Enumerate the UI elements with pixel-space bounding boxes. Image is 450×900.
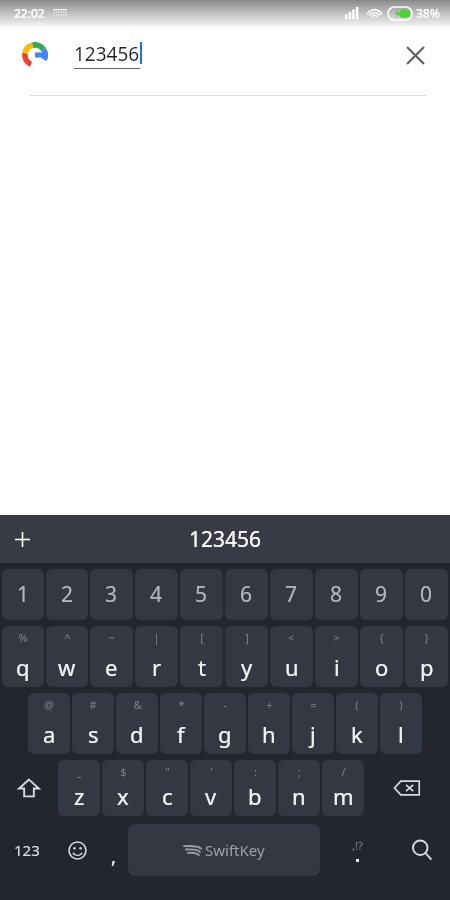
button[interactable]: %	[2, 626, 44, 687]
button[interactable]: )	[380, 693, 422, 754]
staticText: 22:02	[14, 5, 45, 21]
button[interactable]: #	[72, 693, 114, 754]
button[interactable]: 8	[315, 569, 358, 620]
button[interactable]: Backspace	[364, 760, 450, 816]
staticText: n	[292, 781, 306, 811]
button[interactable]: 123	[0, 821, 54, 879]
staticText: ]	[245, 630, 249, 645]
staticText: {	[379, 630, 384, 645]
button[interactable]: ,!?	[320, 821, 394, 879]
staticText: %	[18, 630, 28, 645]
button[interactable]: *	[160, 693, 202, 754]
button[interactable]: Space	[128, 824, 320, 876]
staticText: 123	[14, 840, 40, 860]
staticText: 1	[17, 580, 30, 609]
staticText: t	[198, 652, 206, 682]
staticText: o	[375, 652, 389, 682]
staticText: y	[241, 652, 253, 682]
button[interactable]: &	[116, 693, 158, 754]
staticText: ~	[108, 630, 115, 645]
staticText: =	[310, 697, 317, 712]
staticText: x	[117, 781, 129, 811]
staticText: e	[105, 652, 118, 682]
staticText: b	[248, 781, 262, 811]
button[interactable]: <	[270, 626, 313, 687]
staticText: f	[177, 719, 185, 749]
staticText: @	[44, 697, 54, 712]
staticText: z	[74, 781, 85, 811]
staticText: &	[133, 697, 142, 712]
staticText: 7	[285, 580, 298, 609]
staticText: 6	[240, 580, 253, 609]
button[interactable]: Clear	[398, 38, 432, 72]
button[interactable]: ~	[90, 626, 133, 687]
button[interactable]: /	[322, 760, 364, 816]
button[interactable]: 1	[2, 569, 44, 620]
button[interactable]: Emoji	[54, 821, 100, 879]
button[interactable]: (	[336, 693, 378, 754]
button[interactable]: ;	[278, 760, 320, 816]
staticText: l	[398, 719, 404, 749]
staticText: ;	[298, 764, 301, 779]
button[interactable]: 123456	[0, 515, 450, 563]
staticText: i	[334, 652, 340, 682]
button[interactable]: +	[248, 693, 290, 754]
staticText: (	[355, 697, 359, 712]
staticText: "	[165, 764, 170, 779]
button[interactable]: $	[102, 760, 144, 816]
staticText: ,!?	[352, 838, 363, 853]
staticText: q	[16, 652, 30, 682]
button[interactable]: 5	[180, 569, 223, 620]
button[interactable]: 2	[46, 569, 88, 620]
button[interactable]: @	[28, 693, 70, 754]
staticText: SwiftKey	[205, 840, 265, 860]
staticText: r	[152, 652, 162, 682]
staticText: ,	[111, 843, 117, 869]
button[interactable]: ,	[100, 821, 128, 879]
staticText: a	[43, 719, 56, 749]
button[interactable]: 4	[135, 569, 178, 620]
staticText: 2	[61, 580, 74, 609]
staticText: $	[120, 764, 127, 779]
staticText: )	[399, 697, 403, 712]
staticText: }	[424, 630, 429, 645]
button[interactable]: :	[234, 760, 276, 816]
button[interactable]: 6	[225, 569, 268, 620]
button[interactable]: >	[315, 626, 358, 687]
button[interactable]: _	[58, 760, 100, 816]
button[interactable]: Add	[0, 517, 44, 561]
staticText: u	[285, 652, 299, 682]
staticText: p	[420, 652, 434, 682]
button[interactable]: 3	[90, 569, 133, 620]
staticText: g	[218, 719, 232, 749]
staticText: +	[266, 697, 273, 712]
staticText: m	[333, 781, 354, 811]
button[interactable]: 0	[405, 569, 448, 620]
button[interactable]: 9	[360, 569, 403, 620]
staticText: :	[254, 764, 257, 779]
button[interactable]: [	[180, 626, 223, 687]
button[interactable]: }	[405, 626, 448, 687]
button[interactable]: 7	[270, 569, 313, 620]
staticText: c	[162, 781, 173, 811]
button[interactable]: Search	[394, 821, 450, 879]
staticText: 123456	[74, 41, 140, 67]
staticText: 4	[150, 580, 163, 609]
staticText: -	[223, 697, 227, 712]
staticText: [	[200, 630, 204, 645]
button[interactable]: -	[204, 693, 246, 754]
staticText: j	[310, 719, 316, 749]
button[interactable]: "	[146, 760, 188, 816]
button[interactable]: =	[292, 693, 334, 754]
staticText: h	[262, 719, 276, 749]
button[interactable]: |	[135, 626, 178, 687]
staticText: w	[58, 652, 76, 682]
button[interactable]: '	[190, 760, 232, 816]
staticText: >	[333, 630, 340, 645]
staticText: 9	[375, 580, 388, 609]
button[interactable]: Shift	[0, 760, 58, 816]
staticText: '	[210, 764, 213, 779]
button[interactable]: ^	[46, 626, 88, 687]
button[interactable]: {	[360, 626, 403, 687]
button[interactable]: ]	[225, 626, 268, 687]
